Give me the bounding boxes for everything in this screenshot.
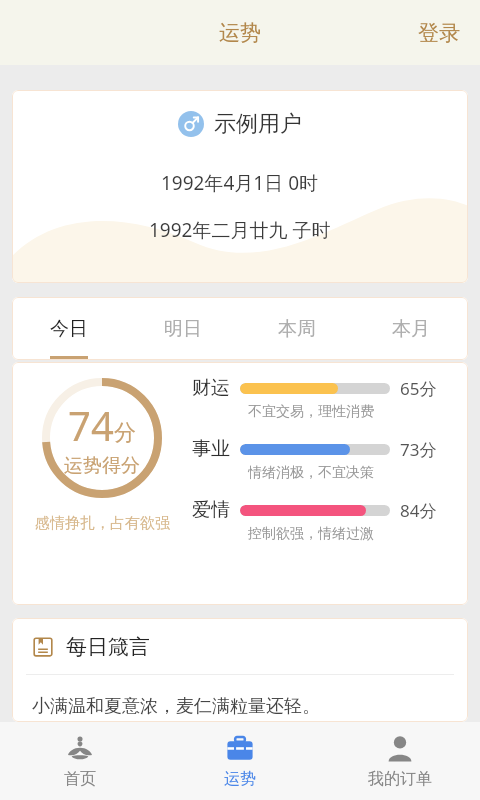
staticText: 运势 (224, 769, 256, 789)
staticText: 每日箴言 (66, 634, 150, 660)
staticText: 运势得分 (64, 454, 140, 478)
staticText: 分 (114, 419, 136, 447)
staticText: 运势 (219, 20, 261, 46)
staticText: 示例用户 (214, 110, 302, 138)
button[interactable]: 运势 (160, 722, 320, 800)
staticText: 74 (68, 398, 114, 452)
button[interactable]: 首页 (0, 722, 160, 800)
staticText: 1992年4月1日 0时 (161, 170, 319, 196)
button[interactable]: 本月 (354, 297, 468, 360)
staticText: 首页 (64, 769, 96, 789)
staticText: 小满温和夏意浓，麦仁满粒量还轻。 (32, 695, 320, 718)
staticText: 84分 (400, 499, 437, 522)
button[interactable]: 本周 (240, 297, 354, 360)
button[interactable]: 我的订单 (320, 722, 480, 800)
staticText: 65分 (400, 377, 437, 400)
staticText: 本周 (278, 317, 316, 341)
staticText: 感情挣扎，占有欲强 (35, 514, 170, 533)
button[interactable]: 今日 (12, 297, 126, 360)
other: 性别 男 (178, 111, 204, 137)
staticText: 1992年二月廿九 子时 (149, 217, 331, 243)
staticText: 事业 (192, 437, 230, 461)
staticText: 登录 (418, 20, 460, 46)
staticText: 不宜交易，理性消费 (248, 403, 374, 421)
staticText: 今日 (50, 317, 88, 341)
staticText: 本月 (392, 317, 430, 341)
staticText: 73分 (400, 438, 437, 461)
staticText: 爱情 (192, 498, 230, 522)
staticText: 明日 (164, 317, 202, 341)
staticText: 我的订单 (368, 769, 432, 789)
staticText: 情绪消极，不宜决策 (248, 464, 374, 482)
button[interactable]: 明日 (126, 297, 240, 360)
staticText: 控制欲强，情绪过激 (248, 525, 374, 543)
staticText: 财运 (192, 376, 230, 400)
button[interactable]: 登录 (398, 10, 480, 56)
button[interactable]: 运势 (201, 12, 279, 54)
